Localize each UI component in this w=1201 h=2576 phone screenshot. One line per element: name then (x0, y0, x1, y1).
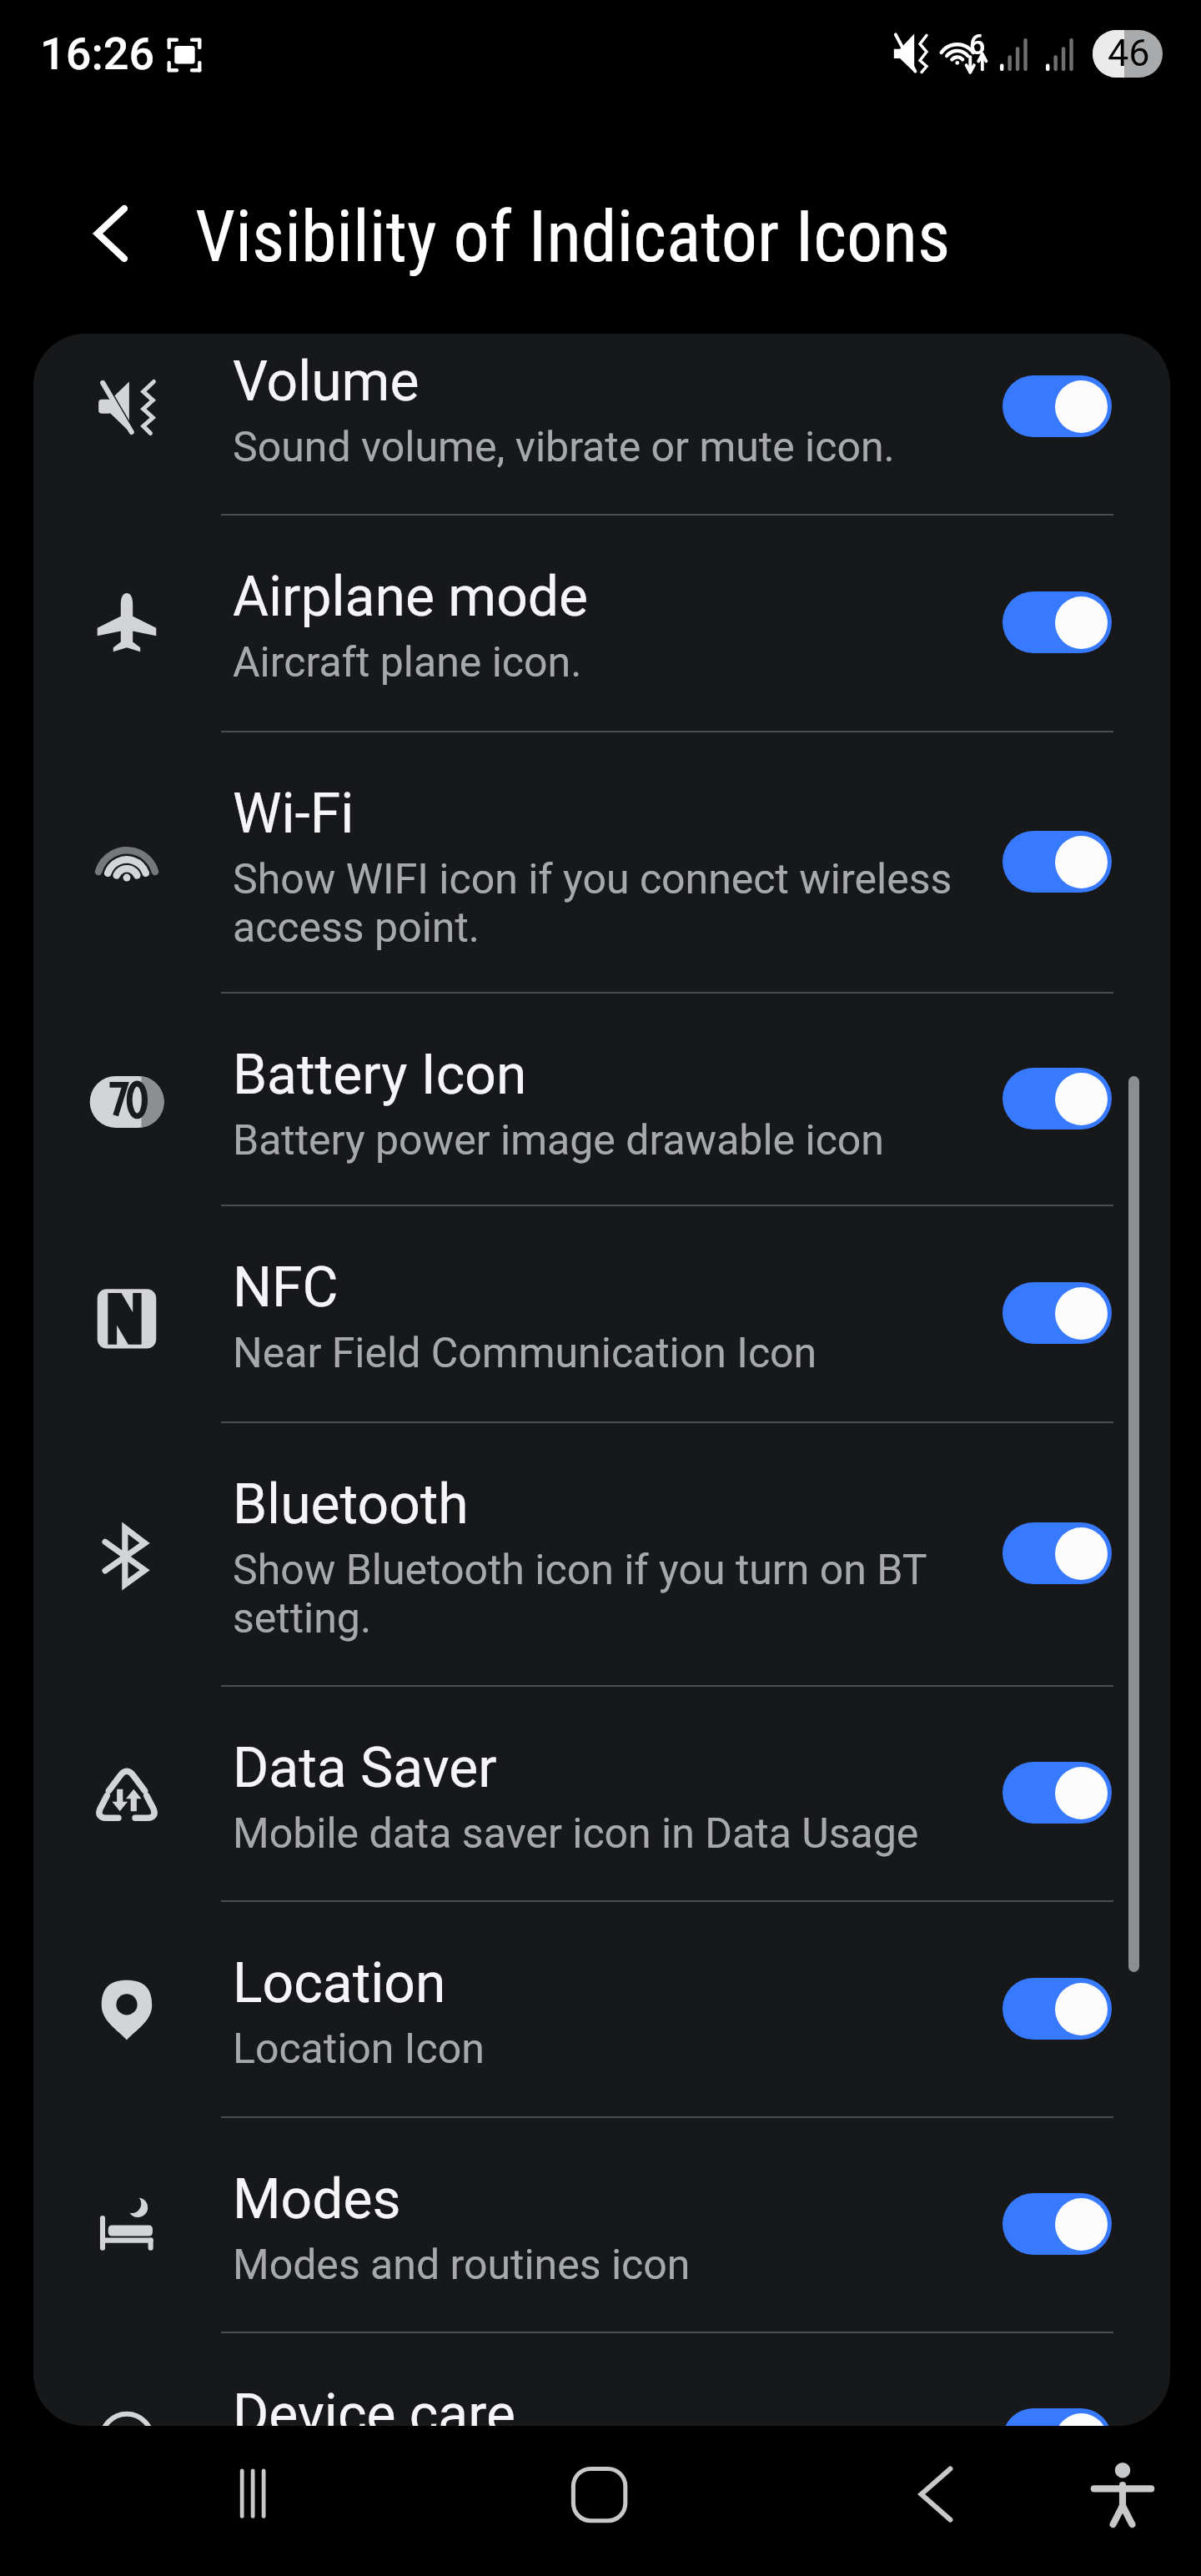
button[interactable]: Modes (33, 2116, 1170, 2332)
staticText: Data Saver (233, 1736, 497, 1800)
button[interactable]: Volume (33, 334, 1170, 514)
button[interactable]: Toggle Modes (1003, 2193, 1112, 2255)
button[interactable]: NFC (33, 1205, 1170, 1421)
button[interactable]: Recents (214, 2444, 314, 2544)
staticText: Battery power image drawable icon (233, 1116, 884, 1165)
button[interactable]: Wi-Fi (33, 731, 1170, 992)
button[interactable]: Toggle Battery Icon (1003, 1068, 1112, 1130)
staticText: Show Bluetooth icon if you turn on BT (233, 1546, 927, 1595)
staticText: Visibility of Indicator Icons (195, 194, 951, 279)
button[interactable]: Toggle Wi-Fi (1003, 831, 1112, 893)
button[interactable]: Device care (33, 2332, 1170, 2426)
button[interactable]: Accessibility (1073, 2444, 1173, 2544)
staticText: setting. (233, 1594, 372, 1643)
staticText: Sound volume, vibrate or mute icon. (233, 423, 895, 472)
staticText: NFC (233, 1255, 339, 1320)
staticText: 46 (1108, 31, 1150, 75)
button[interactable]: Toggle Airplane mode (1003, 591, 1112, 653)
staticText: Modes (233, 2167, 401, 2231)
staticText: Near Field Communication Icon (233, 1329, 817, 1378)
button[interactable]: Toggle Bluetooth (1003, 1522, 1112, 1584)
staticText: Airplane mode (233, 565, 589, 629)
staticText: Show WIFI icon if you connect wireless (233, 855, 952, 904)
button[interactable]: Toggle Device care (1003, 2408, 1112, 2426)
staticText: Wi-Fi (233, 782, 354, 846)
staticText: Modes and routines icon (233, 2241, 691, 2290)
button[interactable]: Battery Icon (33, 992, 1170, 1205)
button[interactable]: Airplane mode (33, 514, 1170, 731)
staticText: Mobile data saver icon in Data Usage (233, 1809, 919, 1859)
button[interactable]: Toggle Location (1003, 1978, 1112, 2040)
button[interactable]: Location (33, 1900, 1170, 2116)
staticText: Location Icon (233, 2025, 485, 2074)
button[interactable]: Home (549, 2444, 649, 2544)
button[interactable]: Toggle Volume (1003, 375, 1112, 437)
button[interactable]: Back (886, 2444, 986, 2544)
staticText: Aircraft plane icon. (233, 638, 582, 687)
staticText: 6 (969, 28, 986, 61)
button[interactable]: Data Saver (33, 1685, 1170, 1900)
staticText: Volume (233, 350, 420, 414)
staticText: 16:26 (40, 28, 155, 80)
staticText: Bluetooth (233, 1472, 469, 1537)
staticText: access point. (233, 903, 480, 953)
button[interactable]: Toggle Data Saver (1003, 1762, 1112, 1824)
button[interactable]: Toggle NFC (1003, 1282, 1112, 1344)
staticText: Location (233, 1951, 446, 2015)
button[interactable]: Back (59, 184, 159, 284)
staticText: Device care (233, 2382, 516, 2426)
button[interactable]: Bluetooth (33, 1421, 1170, 1685)
staticText: Battery Icon (233, 1043, 527, 1107)
